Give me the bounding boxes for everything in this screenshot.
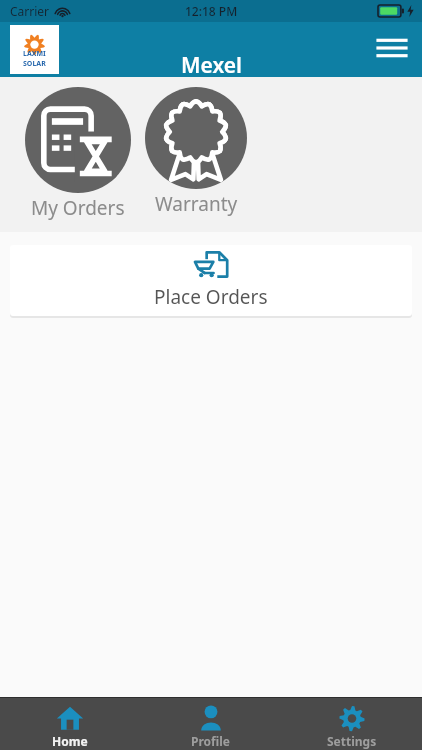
button[interactable]: Home: [0, 698, 140, 750]
staticText: Profile: [191, 733, 231, 749]
staticText: Settings: [327, 733, 377, 749]
button[interactable]: My Orders: [25, 87, 131, 221]
staticText: Place Orders: [154, 284, 268, 310]
staticText: 12:18 PM: [185, 3, 238, 19]
staticText: My Orders: [31, 195, 125, 221]
button[interactable]: Profile: [140, 698, 281, 750]
staticText: Mexel: [181, 51, 242, 80]
button[interactable]: Place Orders: [10, 245, 412, 316]
button[interactable]: Laxmi Solar logo: [10, 25, 59, 74]
staticText: LAXMI: [23, 49, 46, 59]
button[interactable]: Menu: [370, 26, 414, 70]
staticText: Home: [52, 733, 88, 749]
staticText: Carrier: [10, 3, 50, 19]
staticText: Warranty: [155, 191, 238, 217]
button[interactable]: Warranty: [145, 87, 247, 217]
button[interactable]: Settings: [281, 698, 422, 750]
staticText: SOLAR: [23, 59, 46, 69]
